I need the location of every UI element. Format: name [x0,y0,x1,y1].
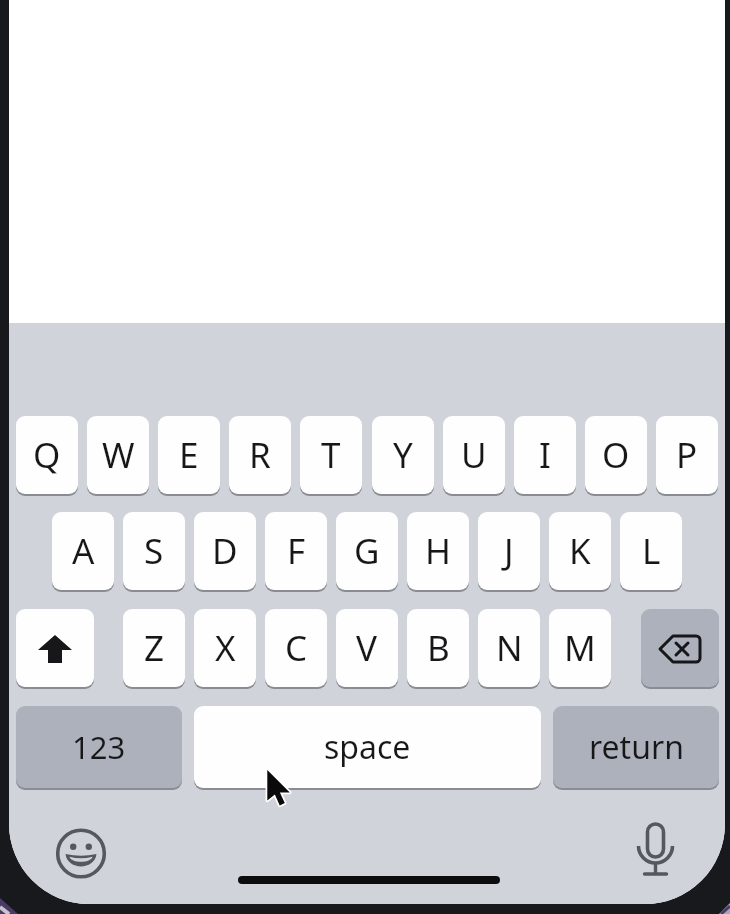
button[interactable]: Y [372,416,434,494]
button[interactable]: G [336,512,398,590]
staticText: S [144,527,164,575]
staticText: X [215,624,236,672]
staticText: N [496,624,523,672]
staticText: V [356,624,378,672]
staticText: return [589,725,684,769]
button[interactable] [628,820,684,876]
staticText: T [321,431,341,479]
staticText: Y [393,431,413,479]
staticText: space [324,725,411,769]
staticText: G [354,527,380,575]
button[interactable]: Q [16,416,78,494]
button[interactable]: P [656,416,718,494]
staticText: J [504,527,514,575]
staticText: D [212,527,238,575]
button[interactable]: S [123,512,185,590]
staticText: E [179,431,199,479]
button[interactable]: M [549,609,611,687]
button[interactable]: J [478,512,540,590]
button[interactable]: O [585,416,647,494]
button[interactable]: Z [123,609,185,687]
staticText: C [285,624,308,672]
button[interactable]: T [300,416,362,494]
button[interactable]: return [553,706,719,788]
button[interactable]: A [52,512,114,590]
button[interactable]: E [158,416,220,494]
button[interactable]: I [514,416,576,494]
button[interactable]: V [336,609,398,687]
staticText: 123 [72,726,126,768]
button[interactable]: F [265,512,327,590]
button[interactable] [641,609,719,687]
button[interactable]: L [620,512,682,590]
staticText: A [72,527,95,575]
button[interactable]: 123 [16,706,182,788]
button[interactable]: space [194,706,541,788]
staticText: I [539,431,551,479]
staticText: K [569,527,591,575]
button[interactable] [53,826,109,882]
staticText: R [249,431,271,479]
staticText: H [425,527,451,575]
staticText: L [642,527,661,575]
staticText: O [602,431,630,479]
staticText: F [287,527,306,575]
button[interactable] [16,609,94,687]
button[interactable]: D [194,512,256,590]
staticText: W [102,431,135,479]
staticText: Z [144,624,165,672]
button[interactable]: W [87,416,149,494]
staticText: B [427,624,450,672]
button[interactable]: R [229,416,291,494]
button[interactable]: K [549,512,611,590]
staticText: M [564,624,596,672]
button[interactable]: B [407,609,469,687]
staticText: U [461,431,487,479]
button[interactable]: U [443,416,505,494]
staticText: P [676,431,698,479]
button[interactable]: X [194,609,256,687]
button[interactable]: C [265,609,327,687]
button[interactable]: N [478,609,540,687]
staticText: Q [33,431,61,479]
button[interactable]: H [407,512,469,590]
